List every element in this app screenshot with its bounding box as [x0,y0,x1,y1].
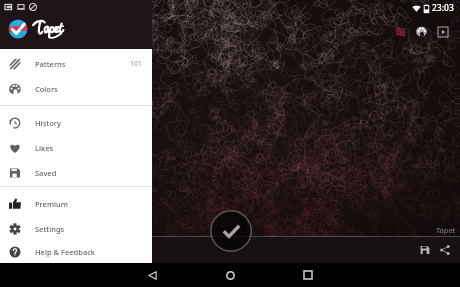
staticText: Saved [35,168,57,178]
button[interactable]: Help & Feedback [0,241,152,263]
button[interactable]: Apply wallpaper [209,209,253,253]
button[interactable]: Back [113,263,191,287]
staticText: Colors [35,84,58,94]
staticText: Patterns [35,59,66,69]
button[interactable]: Patterns [0,51,152,76]
button[interactable]: Share [435,240,455,260]
staticText: Settings [35,224,65,234]
button[interactable]: Premium [0,191,152,216]
button[interactable]: Settings [0,216,152,241]
staticText: 101 [130,59,143,69]
button[interactable]: Likes [0,135,152,160]
staticText: Help & Feedback [35,247,96,257]
staticText: Premium [35,199,68,209]
staticText: 23:03 [432,2,454,14]
button[interactable]: Saved [0,160,152,185]
staticText: Likes [35,143,54,153]
button[interactable]: Recents [269,263,347,287]
button[interactable]: Pattern [390,21,411,42]
button[interactable]: History [0,110,152,135]
button[interactable]: Save [415,240,435,260]
staticText: History [35,118,61,128]
button[interactable]: Home [191,263,269,287]
staticText: Tapet [436,225,456,235]
button[interactable]: Colors [411,21,432,42]
button[interactable]: Colors [0,76,152,101]
button[interactable]: More options [432,21,453,42]
